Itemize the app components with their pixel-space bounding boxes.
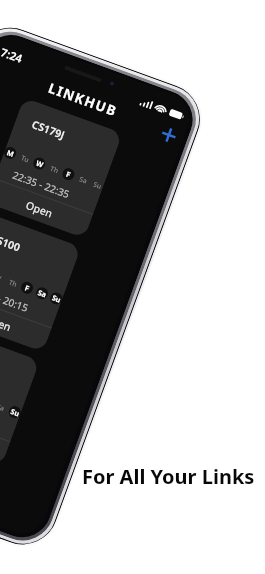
staticText: W <box>35 158 45 170</box>
button[interactable]: M <box>2 145 18 161</box>
staticText: W <box>0 272 3 283</box>
staticText: 22:35 - 22:35 <box>11 168 72 201</box>
button[interactable]: Su <box>48 291 64 306</box>
staticText: F <box>23 282 31 293</box>
staticText: Th <box>7 278 19 289</box>
staticText: 7:24 <box>0 44 25 66</box>
staticText: Sa <box>78 174 89 186</box>
staticText: M <box>6 147 16 159</box>
button[interactable]: Su <box>7 404 22 420</box>
staticText: 19:15 - 20:15 <box>0 281 31 315</box>
staticText: CS179J <box>30 117 67 142</box>
staticText: Tu <box>20 153 30 164</box>
staticText: LINKHUB <box>46 79 121 121</box>
staticText: Su <box>92 180 103 191</box>
button[interactable]: CS179J <box>0 97 123 238</box>
staticText: CS100 <box>0 231 23 255</box>
button[interactable]: W <box>32 156 47 171</box>
staticText: Su <box>9 406 21 418</box>
button[interactable]: Open <box>0 406 10 466</box>
button[interactable]: Th <box>47 161 62 177</box>
button[interactable]: Sa <box>0 399 8 415</box>
staticText: Su <box>51 292 63 305</box>
button[interactable]: CS141 <box>0 325 40 466</box>
staticText: Th <box>49 164 60 175</box>
button[interactable]: Su <box>90 177 105 192</box>
staticText: Sa <box>0 402 6 413</box>
button[interactable]: F <box>61 166 76 182</box>
button[interactable]: Th <box>5 275 21 290</box>
button[interactable]: Sa <box>34 286 50 301</box>
button[interactable]: Tu <box>17 151 33 166</box>
button[interactable]: F <box>19 280 35 295</box>
button[interactable]: Open <box>0 179 93 238</box>
button[interactable]: Sa <box>76 172 91 187</box>
button[interactable]: Add link <box>154 120 183 149</box>
staticText: Open <box>0 312 14 334</box>
staticText: For All Your Links <box>82 463 255 490</box>
button[interactable]: CS100 <box>0 211 81 352</box>
staticText: Open <box>24 198 55 221</box>
button[interactable]: Open <box>0 293 51 352</box>
button[interactable]: W <box>0 269 6 285</box>
staticText: F <box>65 169 72 179</box>
staticText: Sa <box>37 287 48 300</box>
